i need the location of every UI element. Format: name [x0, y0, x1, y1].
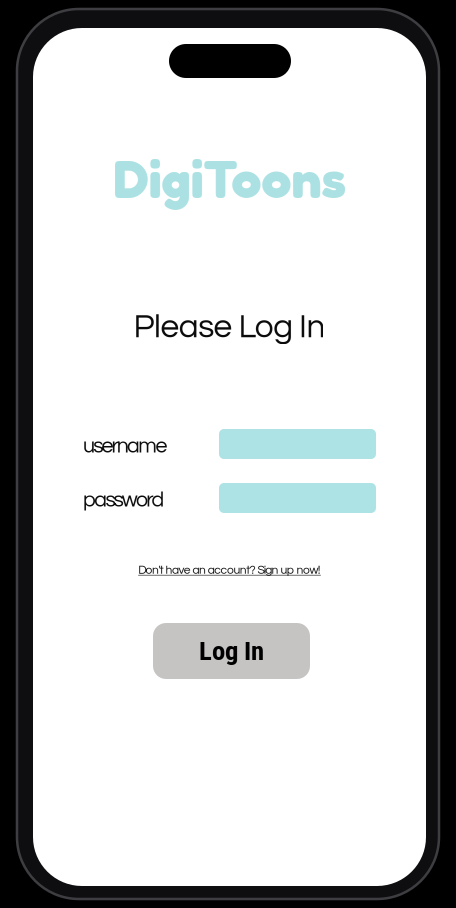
staticText: DigiToons — [113, 146, 345, 210]
staticText: Don't have an account? Sign up now! — [138, 564, 321, 576]
staticText: password — [83, 489, 164, 511]
staticText: Log In — [199, 635, 264, 667]
staticText: username — [83, 435, 167, 457]
staticText: Please Log In — [134, 310, 325, 344]
button[interactable]: Log In — [153, 623, 310, 679]
button[interactable]: Don't have an account? Sign up now! — [33, 562, 426, 578]
